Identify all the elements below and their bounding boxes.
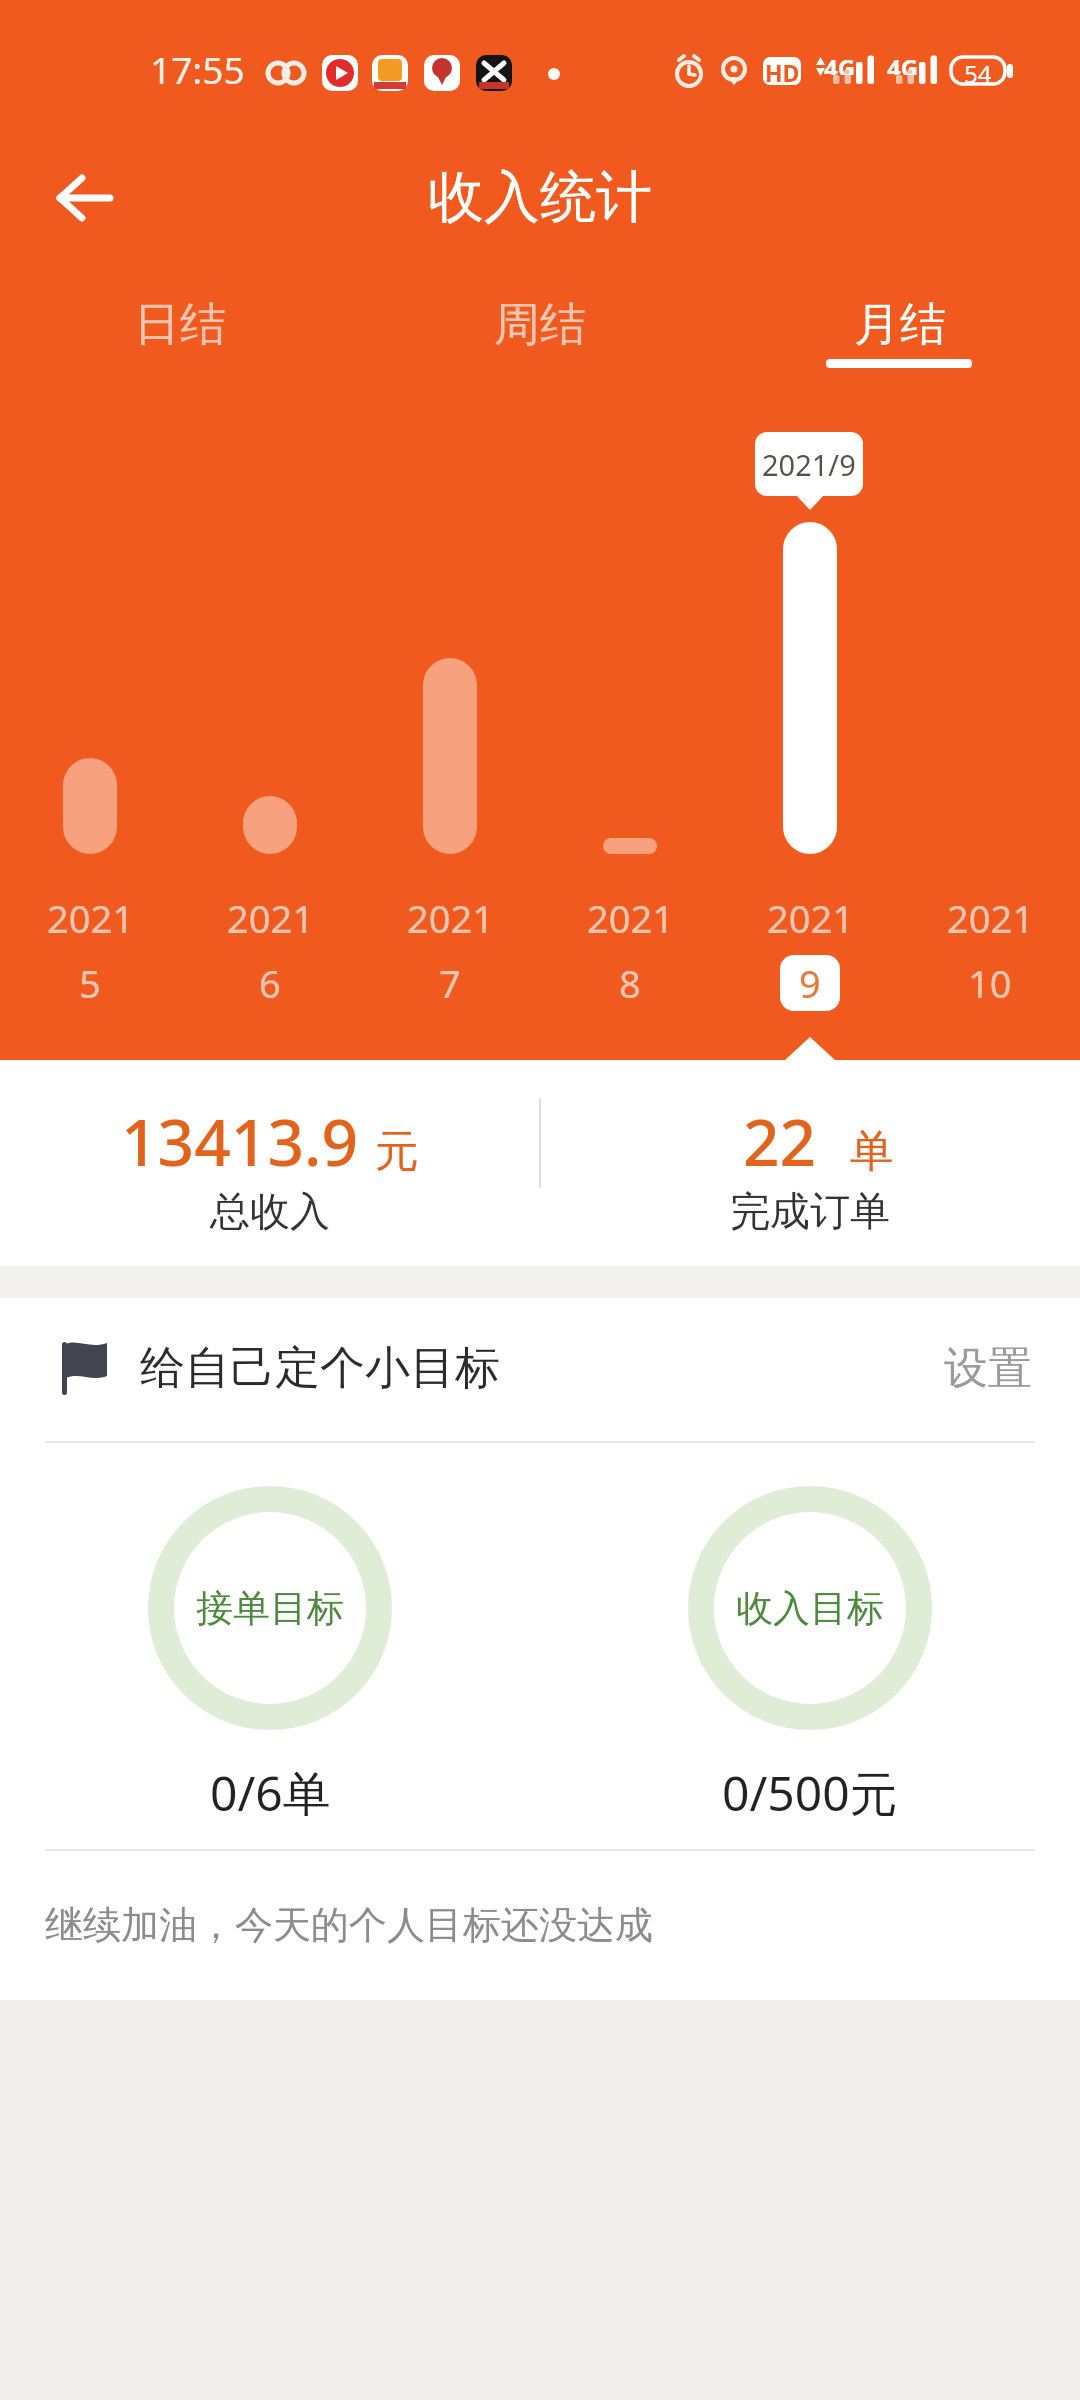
staticText: 完成订单 — [730, 1186, 890, 1236]
staticText: 继续加油，今天的个人目标还没达成 — [45, 1901, 653, 1949]
staticText: 8 — [619, 957, 641, 1009]
staticText: 2021 — [587, 892, 674, 944]
staticText: 周结 — [494, 296, 586, 354]
staticText: 22 单 — [743, 1098, 894, 1180]
staticText: 7 — [439, 957, 461, 1009]
button[interactable] — [423, 658, 477, 854]
staticText: 13413.9 元 — [121, 1098, 419, 1180]
staticText: HD — [765, 57, 800, 85]
staticText: 5 — [79, 957, 101, 1009]
button[interactable]: 周结 — [360, 290, 720, 360]
staticText: 54 — [964, 57, 992, 84]
staticText: 月结 — [854, 296, 946, 354]
button[interactable] — [783, 522, 837, 854]
button[interactable] — [63, 758, 117, 854]
button[interactable] — [603, 838, 657, 854]
staticText: 给自己定个小目标 — [140, 1340, 500, 1397]
staticText: 2021/9 — [762, 445, 856, 484]
button[interactable]: 收入目标 — [688, 1486, 932, 1730]
staticText: 2021 — [227, 892, 314, 944]
button[interactable]: 接单目标 — [148, 1486, 392, 1730]
staticText: 2021 — [947, 892, 1034, 944]
staticText: 2021 — [47, 892, 134, 944]
staticText: 10 — [968, 957, 1012, 1009]
staticText: 2021 — [767, 892, 854, 944]
button[interactable]: 月结 — [720, 290, 1080, 360]
button[interactable]: 日结 — [0, 290, 360, 360]
staticText: 2021 — [407, 892, 494, 944]
button[interactable]: 给自己定个小目标 — [0, 1325, 1080, 1411]
staticText: 收入目标 — [736, 1585, 884, 1632]
staticText: 4G — [887, 51, 919, 75]
staticText: 6 — [259, 957, 281, 1009]
staticText: 17:55 — [150, 44, 245, 94]
staticText: 日结 — [134, 296, 226, 354]
button[interactable] — [40, 155, 130, 241]
staticText: 设置 — [944, 1341, 1032, 1396]
staticText: 接单目标 — [196, 1585, 344, 1632]
button[interactable]: 9 — [780, 955, 840, 1011]
staticText: 0/6单 — [210, 1760, 331, 1816]
staticText: 4G — [824, 51, 856, 75]
staticText: 0/500元 — [722, 1760, 898, 1816]
staticText: 9 — [799, 957, 821, 1009]
staticText: 总收入 — [210, 1186, 330, 1236]
staticText: 收入统计 — [428, 162, 652, 233]
button[interactable] — [243, 796, 297, 854]
